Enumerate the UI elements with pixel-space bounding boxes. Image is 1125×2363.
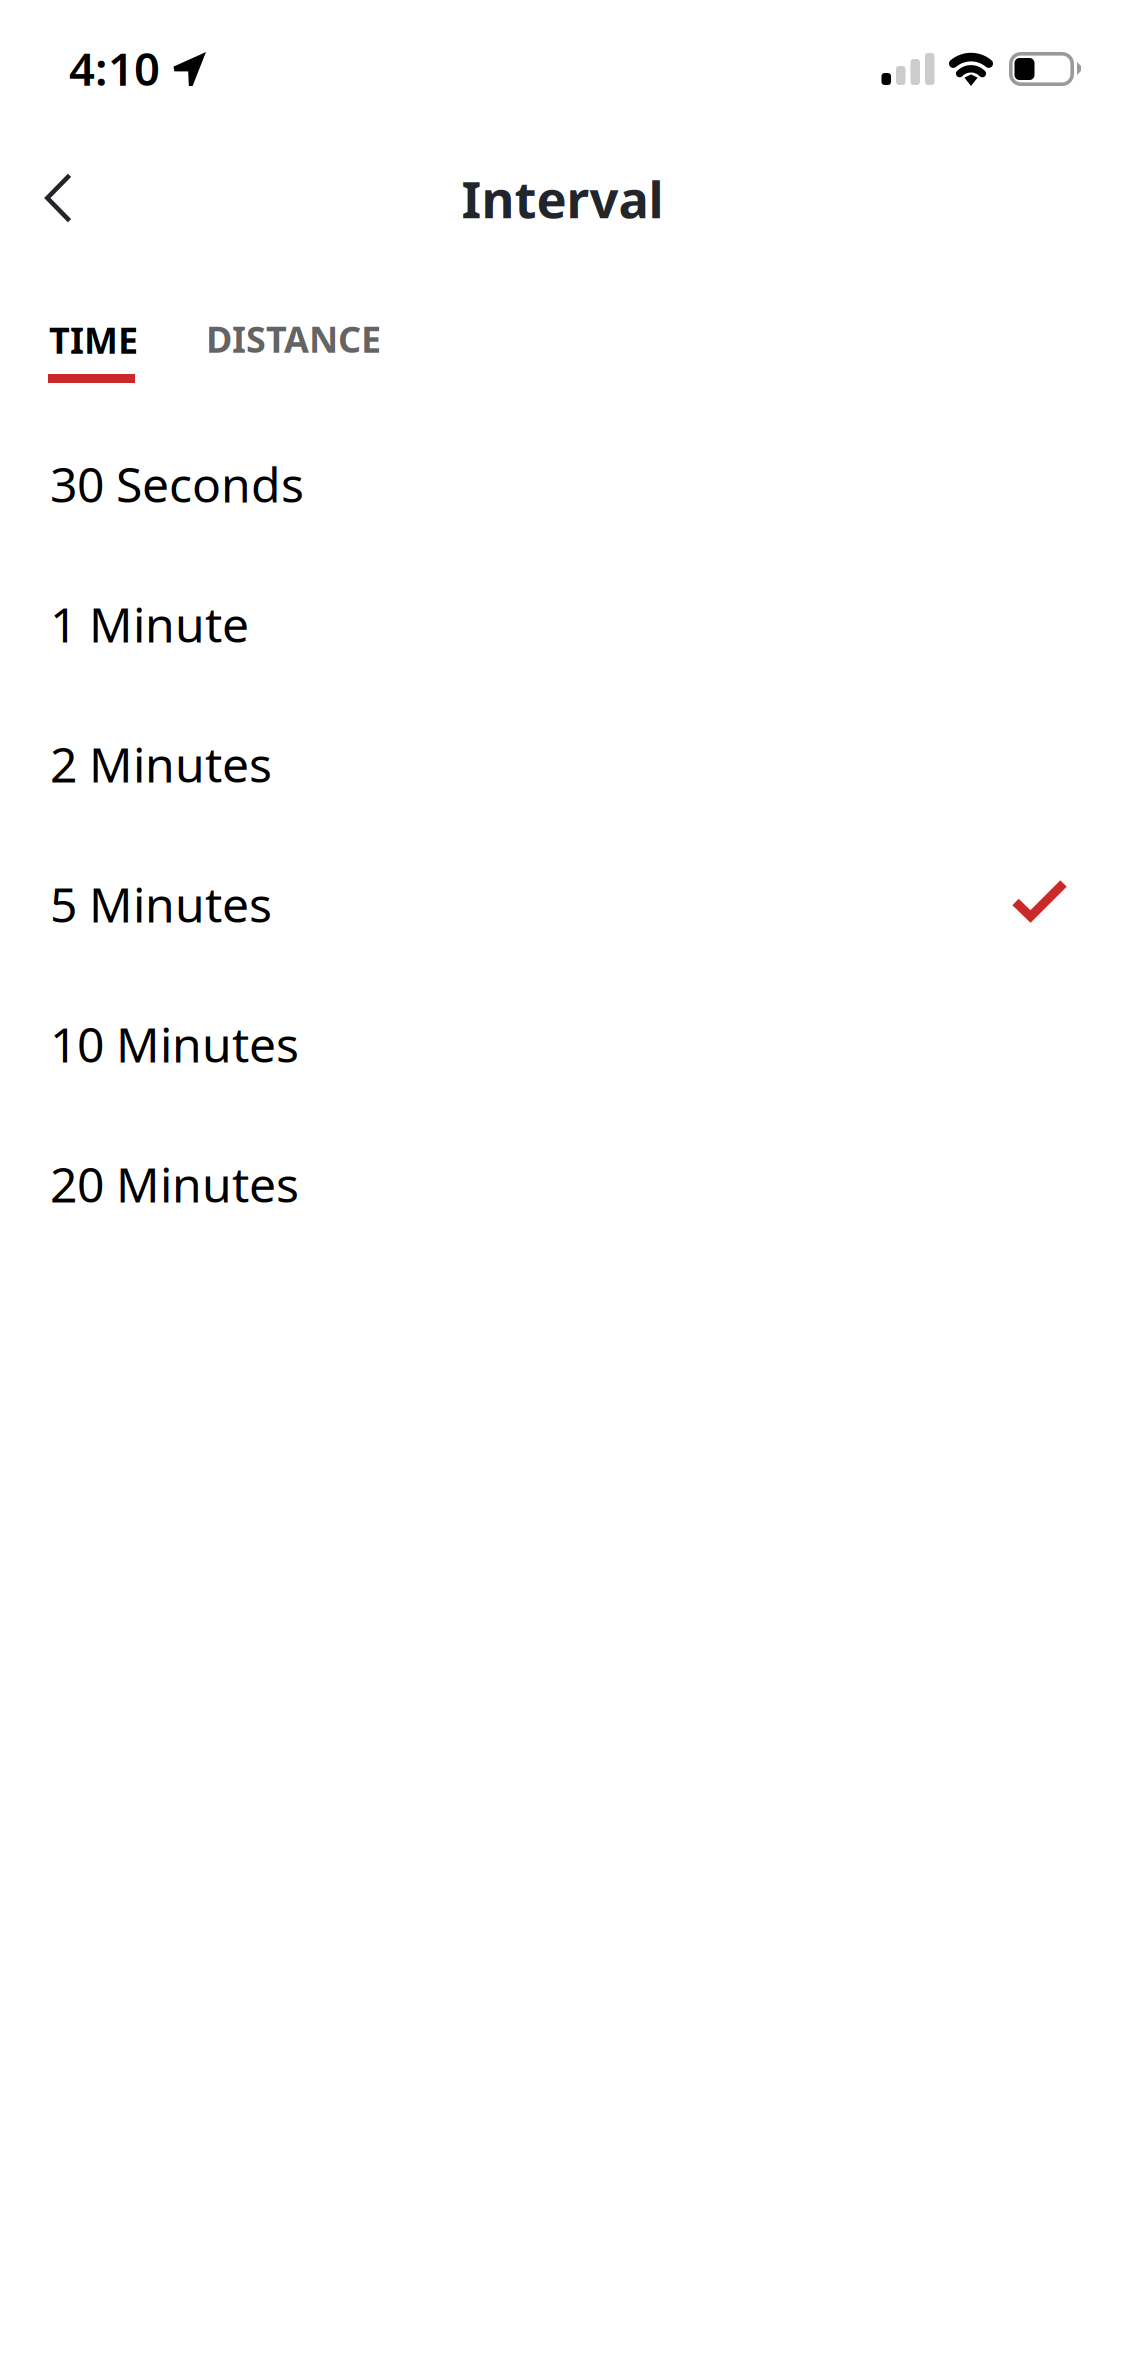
button[interactable]: TIME bbox=[48, 322, 140, 384]
staticText: 20 Minutes bbox=[50, 1152, 299, 1216]
staticText: 4:10 bbox=[69, 38, 160, 98]
button[interactable]: 20 Minutes bbox=[0, 1114, 1125, 1254]
staticText: DISTANCE bbox=[206, 315, 381, 363]
staticText: TIME bbox=[49, 316, 138, 364]
button[interactable]: 10 Minutes bbox=[0, 974, 1125, 1114]
button[interactable]: Back bbox=[18, 143, 128, 253]
button[interactable]: 2 Minutes bbox=[0, 694, 1125, 834]
button[interactable]: 1 Minute bbox=[0, 554, 1125, 694]
staticText: 10 Minutes bbox=[50, 1012, 299, 1076]
staticText: 30 Seconds bbox=[50, 452, 304, 516]
button[interactable]: 5 Minutes bbox=[0, 834, 1125, 974]
staticText: 1 Minute bbox=[50, 592, 249, 656]
staticText: 5 Minutes bbox=[50, 872, 272, 936]
button[interactable]: DISTANCE bbox=[209, 322, 393, 384]
button[interactable]: 30 Seconds bbox=[0, 414, 1125, 554]
staticText: Interval bbox=[461, 165, 663, 232]
staticText: 2 Minutes bbox=[50, 732, 272, 796]
